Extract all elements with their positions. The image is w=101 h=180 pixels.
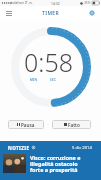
staticText: NOTIZIE: [8, 145, 30, 151]
staticText: 0:58: [24, 45, 73, 79]
staticText: Pausa: [21, 122, 35, 128]
staticText: Visco: corruzione e illegalità ostacolo …: [30, 154, 81, 173]
staticText: 35%: [84, 1, 91, 5]
staticText: SEC: [50, 78, 57, 82]
staticText: 14:32: [51, 1, 60, 6]
staticText: vodafone IT: [10, 1, 28, 5]
staticText: MIN: [30, 78, 38, 82]
button[interactable]: Fatto: [52, 120, 91, 129]
button[interactable]: Settings: [86, 6, 98, 20]
button[interactable]: Pausa: [8, 120, 44, 129]
staticText: Fatto: [68, 122, 80, 128]
staticText: 5 dic 2014: [72, 145, 92, 151]
staticText: TIMER: [42, 10, 60, 17]
button[interactable]: Menu: [3, 6, 15, 20]
button[interactable]: NOTIZIE: [8, 145, 92, 156]
button[interactable]: Visco: corruzione e illegalità ostacolo …: [0, 152, 101, 180]
